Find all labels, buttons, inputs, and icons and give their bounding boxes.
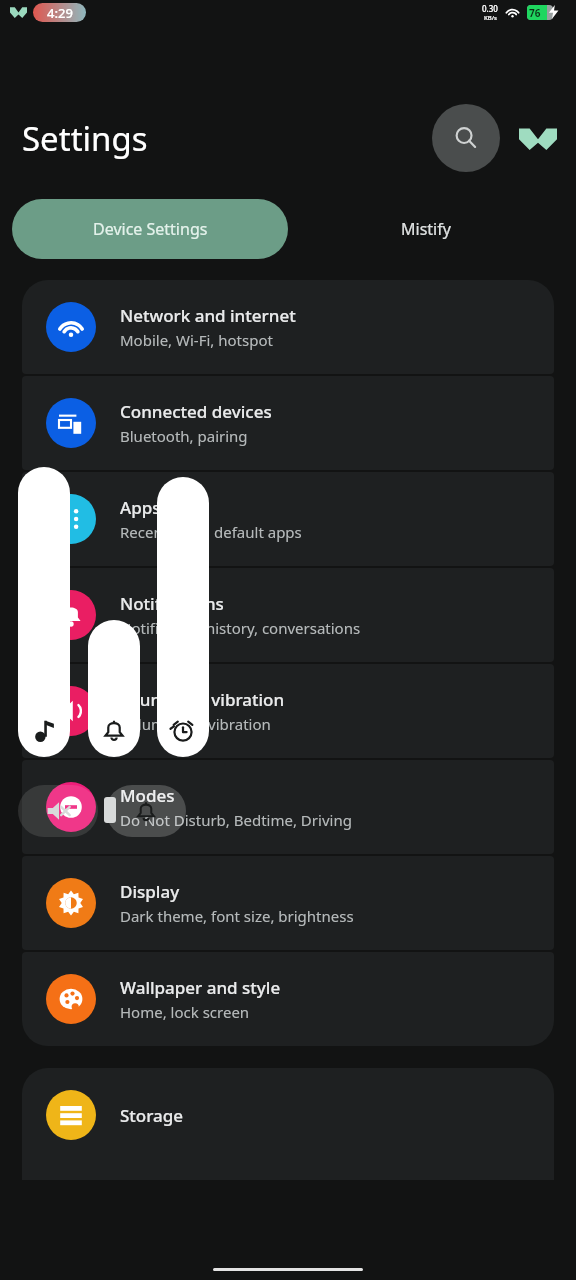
staticText: Notification history, conversations [120,618,361,638]
button[interactable]: Wallpaper and style [22,952,554,1046]
button[interactable]: Volume slider [88,620,140,757]
button[interactable]: Display [22,856,554,950]
staticText: Wallpaper and style [120,976,281,999]
staticText: Apps [120,496,161,519]
button[interactable]: Mute media [18,785,98,837]
staticText: 0.30 [482,3,498,14]
staticText: Display [120,880,180,903]
button[interactable]: Device Settings [12,199,288,259]
staticText: KB/s [484,14,497,22]
button[interactable]: Notifications [22,568,554,662]
button[interactable]: Account [518,118,558,158]
button[interactable]: Network and internet [22,280,554,374]
staticText: Volume and vibration [120,714,271,734]
staticText: Recent apps, default apps [120,522,302,542]
staticText: Notifications [120,592,224,615]
staticText: Connected devices [120,400,272,423]
staticText: Storage [120,1104,184,1127]
staticText: Device Settings [93,218,208,240]
staticText: Modes [120,784,175,807]
button[interactable]: Search settings [432,104,500,172]
staticText: Mistify [401,218,451,240]
button[interactable]: Volume slider [157,477,209,757]
staticText: 4:29 [47,4,73,22]
staticText: Network and internet [120,304,296,327]
staticText: Home, lock screen [120,1002,250,1022]
staticText: Do Not Disturb, Bedtime, Driving [120,810,352,830]
button[interactable]: Connected devices [22,376,554,470]
staticText: Mobile, Wi-Fi, hotspot [120,330,273,350]
staticText: Dark theme, font size, brightness [120,906,354,926]
button[interactable]: Ring mode [106,785,186,837]
staticText: 76 [529,6,553,20]
button[interactable]: Storage [22,1068,554,1180]
staticText: Sound and vibration [120,688,285,711]
staticText: Settings [22,116,148,161]
button[interactable]: Sound and vibration [22,664,554,758]
staticText: Bluetooth, pairing [120,426,248,446]
button[interactable]: Mistify [288,199,564,259]
button[interactable]: Apps [22,472,554,566]
button[interactable]: Volume slider [18,467,70,757]
button[interactable]: Modes [22,760,554,854]
